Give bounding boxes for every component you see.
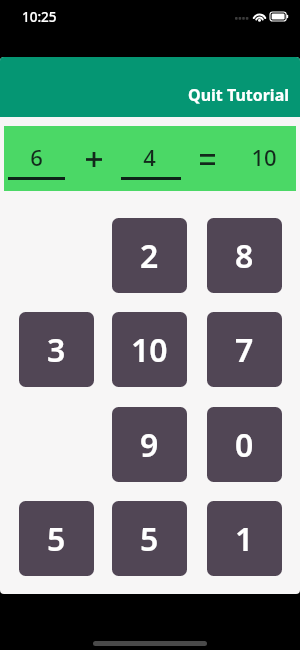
button[interactable]: 2 bbox=[112, 218, 187, 293]
staticText: 5 bbox=[140, 517, 159, 561]
button[interactable]: 1 bbox=[207, 501, 282, 576]
staticText: Quit Tutorial bbox=[188, 84, 290, 106]
button[interactable]: 3 bbox=[19, 312, 94, 387]
staticText: 0 bbox=[235, 423, 254, 467]
staticText: 2 bbox=[140, 234, 159, 278]
other: Wi-Fi bbox=[253, 12, 266, 21]
staticText: 9 bbox=[140, 423, 159, 467]
button[interactable]: 4 bbox=[121, 126, 181, 190]
staticText: 3 bbox=[47, 328, 66, 372]
staticText: 7 bbox=[235, 328, 254, 372]
staticText: 5 bbox=[47, 517, 66, 561]
staticText: 4 bbox=[143, 142, 156, 172]
button[interactable]: 10 bbox=[112, 312, 187, 387]
staticText: 10:25 bbox=[22, 8, 57, 26]
button[interactable]: 0 bbox=[207, 407, 282, 482]
button[interactable]: 6 bbox=[8, 126, 65, 190]
button[interactable]: 7 bbox=[207, 312, 282, 387]
staticText: 10 bbox=[131, 328, 168, 372]
button[interactable]: 5 bbox=[112, 501, 187, 576]
button[interactable]: Quit Tutorial bbox=[178, 82, 300, 108]
other: Cellular signal bbox=[235, 17, 249, 21]
button[interactable]: 5 bbox=[19, 501, 94, 576]
staticText: 8 bbox=[235, 234, 254, 278]
other: Battery bbox=[270, 12, 288, 21]
button[interactable]: 8 bbox=[207, 218, 282, 293]
staticText: 6 bbox=[30, 142, 43, 172]
staticText: 1 bbox=[235, 517, 254, 561]
button[interactable]: 9 bbox=[112, 407, 187, 482]
staticText: 10 bbox=[251, 142, 277, 172]
